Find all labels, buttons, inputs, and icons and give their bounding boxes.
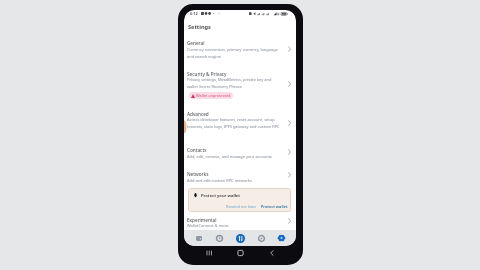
staticText: Add and edit custom RPC networks xyxy=(187,178,282,183)
button[interactable] xyxy=(184,213,296,229)
staticText: Wallet unprotected xyxy=(196,93,231,98)
staticText: Protect wallet xyxy=(261,204,288,209)
button[interactable]: Browser xyxy=(209,230,230,246)
button[interactable]: Protect wallet xyxy=(260,203,289,210)
button[interactable] xyxy=(184,143,296,163)
staticText: Networks xyxy=(187,171,209,177)
staticText: Remind me later xyxy=(226,204,257,209)
staticText: Settings xyxy=(188,23,211,31)
staticText: Advanced xyxy=(187,111,209,117)
button[interactable]: Settings xyxy=(271,230,292,246)
staticText: Contacts xyxy=(187,147,207,153)
staticText: Experimental xyxy=(187,217,217,223)
button[interactable]: Remind me later xyxy=(225,203,258,210)
staticText: Add, edit, remove, and manage your accou… xyxy=(187,154,282,159)
staticText: WalletConnect & more. xyxy=(187,223,282,228)
staticText: General xyxy=(187,40,205,46)
staticText: Currency conversion, primary currency, l… xyxy=(187,47,282,59)
staticText: 6:12 xyxy=(190,11,198,16)
button[interactable]: Wallet xyxy=(188,230,209,246)
button[interactable]: Activity xyxy=(251,230,272,246)
button[interactable] xyxy=(184,36,296,61)
staticText: Security & Privacy xyxy=(187,71,227,77)
button[interactable] xyxy=(184,67,296,101)
button[interactable]: Swap xyxy=(230,230,251,246)
staticText: Access developer features, reset account… xyxy=(187,117,282,129)
button[interactable] xyxy=(184,167,296,184)
staticText: Privacy settings, MetaMetrics, private k… xyxy=(187,77,282,89)
button[interactable] xyxy=(184,107,296,140)
staticText: Protect your wallet xyxy=(201,193,241,199)
